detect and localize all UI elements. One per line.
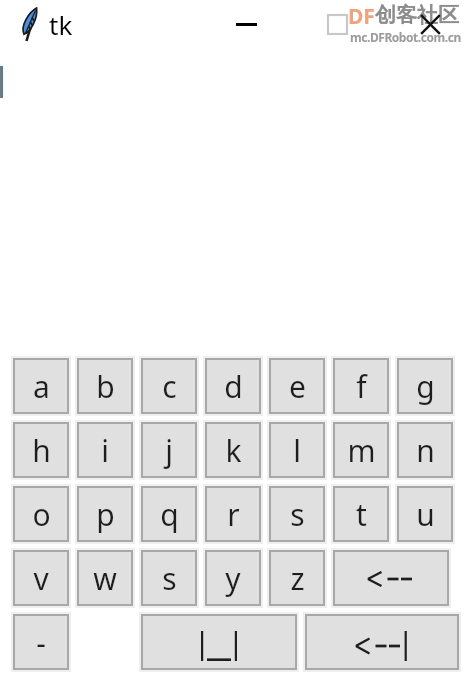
staticText: g [416, 366, 435, 407]
button[interactable]: r [207, 488, 259, 540]
staticText: n [416, 430, 435, 471]
button[interactable]: s [271, 488, 323, 540]
button[interactable]: - [15, 616, 67, 668]
staticText: s [290, 494, 305, 535]
button[interactable]: v [15, 552, 67, 604]
button[interactable]: j [143, 424, 195, 476]
staticText: f [356, 366, 367, 407]
button[interactable]: Minimize [216, 6, 276, 42]
button[interactable]: n [399, 424, 451, 476]
staticText: q [160, 494, 179, 535]
button[interactable]: w [79, 552, 131, 604]
staticText: l [293, 430, 301, 471]
staticText: s [162, 558, 177, 599]
staticText: 创客社区 [375, 2, 459, 28]
button[interactable]: f [335, 360, 387, 412]
staticText: b [96, 366, 115, 407]
staticText: k [225, 430, 242, 471]
button[interactable]: a [15, 360, 67, 412]
staticText: tk [49, 7, 73, 42]
staticText: o [32, 494, 51, 535]
button[interactable]: Maximize [307, 4, 367, 44]
staticText: y [225, 558, 241, 599]
button[interactable]: Backspace [335, 552, 447, 604]
button[interactable]: c [143, 360, 195, 412]
staticText: v [33, 558, 49, 599]
button[interactable]: i [79, 424, 131, 476]
staticText: i [101, 430, 109, 471]
button[interactable]: u [399, 488, 451, 540]
button[interactable]: Enter [307, 616, 457, 668]
staticText: - [36, 622, 46, 663]
button[interactable]: d [207, 360, 259, 412]
other: Tk [20, 7, 38, 41]
staticText: t [356, 494, 367, 535]
button[interactable]: Space [143, 616, 295, 668]
button[interactable]: Close [400, 4, 460, 44]
staticText: u [416, 494, 435, 535]
staticText: h [32, 430, 51, 471]
button[interactable]: m [335, 424, 387, 476]
button[interactable]: b [79, 360, 131, 412]
button[interactable]: z [271, 552, 323, 604]
staticText: d [224, 366, 243, 407]
staticText: c [162, 366, 177, 407]
button[interactable]: h [15, 424, 67, 476]
button[interactable]: k [207, 424, 259, 476]
button[interactable]: o [15, 488, 67, 540]
staticText: p [96, 494, 115, 535]
staticText: w [93, 558, 117, 599]
button[interactable]: p [79, 488, 131, 540]
staticText: DF [348, 2, 375, 31]
staticText: mc.DFRobot.com.cn [350, 29, 461, 45]
button[interactable]: y [207, 552, 259, 604]
staticText: e [289, 366, 306, 407]
staticText: j [165, 430, 173, 471]
button[interactable]: s [143, 552, 195, 604]
button[interactable]: t [335, 488, 387, 540]
staticText: a [33, 366, 50, 407]
staticText: z [290, 558, 305, 599]
button[interactable]: l [271, 424, 323, 476]
button[interactable]: g [399, 360, 451, 412]
button[interactable]: q [143, 488, 195, 540]
staticText: r [227, 494, 240, 535]
button[interactable]: e [271, 360, 323, 412]
staticText: m [347, 430, 376, 471]
